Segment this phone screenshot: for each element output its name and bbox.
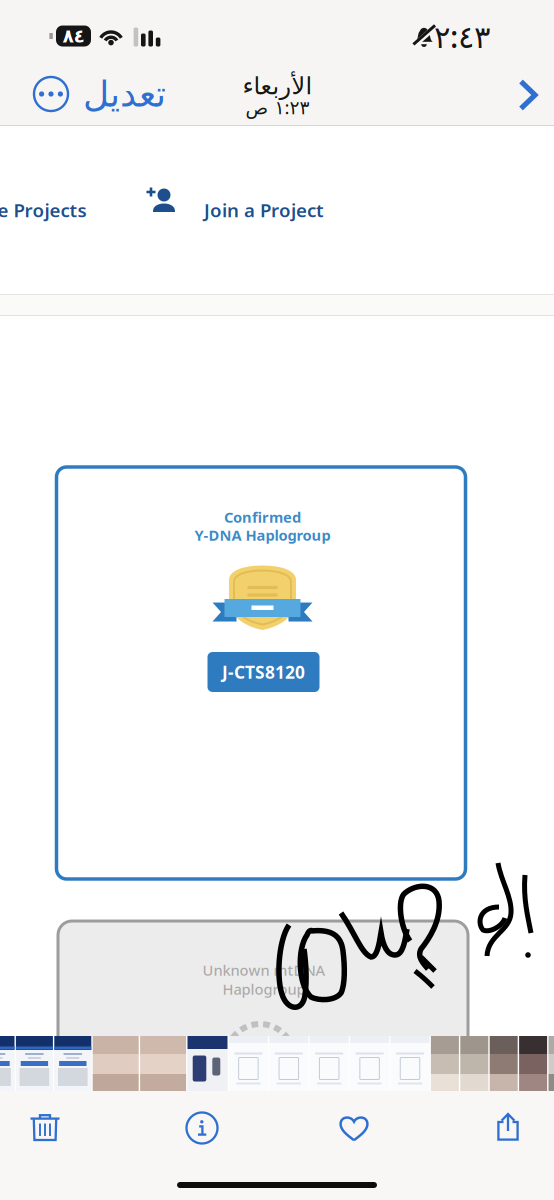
button[interactable]: J-CTS8120 xyxy=(207,652,319,692)
staticText: J-CTS8120 xyxy=(222,660,305,683)
button[interactable]: Favorite xyxy=(327,1101,381,1155)
staticText: تعديل xyxy=(82,74,165,114)
staticText: Y-DNA Haplogroup xyxy=(194,525,330,545)
button[interactable]: Delete xyxy=(18,1101,72,1155)
staticText: Confirmed xyxy=(224,507,301,527)
button[interactable]: Back xyxy=(503,69,553,121)
staticText: الأربعاء xyxy=(242,72,312,100)
button[interactable]: More xyxy=(24,67,78,121)
staticText: ge Projects xyxy=(0,198,86,222)
button[interactable]: Info xyxy=(175,1101,229,1155)
staticText: Join a Project xyxy=(204,198,324,222)
staticText: Haplogroup xyxy=(222,979,305,999)
staticText: ٢:٤٣ xyxy=(434,16,490,56)
button[interactable]: Share xyxy=(481,1100,535,1154)
staticText: Unknown mtDNA xyxy=(202,960,325,980)
staticText: ٨٤ xyxy=(62,25,84,47)
staticText: ١:٢٣ ص xyxy=(245,95,309,119)
button[interactable]: تعديل xyxy=(82,69,166,119)
